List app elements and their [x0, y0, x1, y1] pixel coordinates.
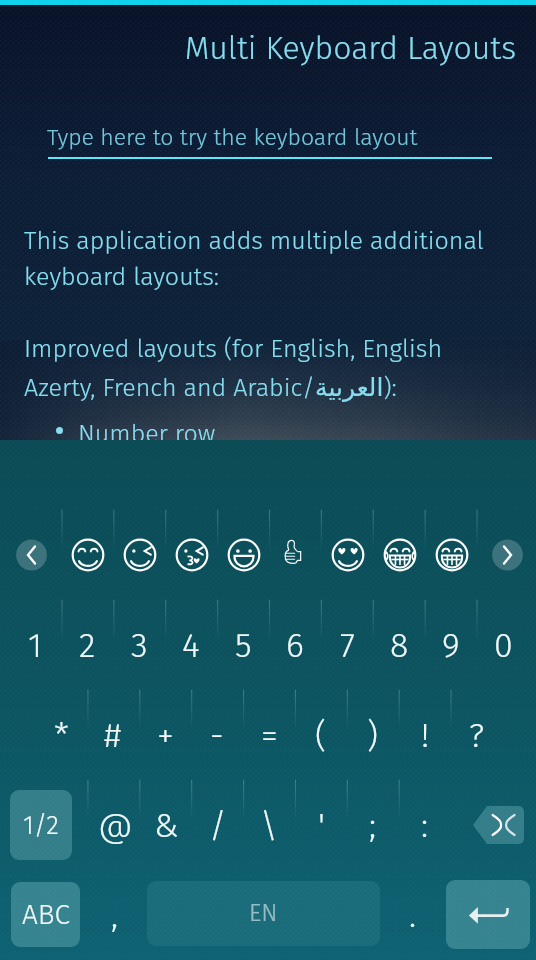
- staticText: ?: [469, 715, 485, 756]
- staticText: 7: [340, 625, 355, 666]
- staticText: Multi Keyboard Layouts: [0, 29, 516, 67]
- staticText: ;: [369, 805, 377, 846]
- staticText: ABC: [22, 898, 70, 932]
- button[interactable]: Previous emoji page: [16, 539, 48, 571]
- staticText: @: [98, 805, 133, 846]
- button[interactable]: ?: [451, 690, 503, 780]
- button[interactable]: 4: [165, 600, 217, 690]
- staticText: Type here to try the keyboard layout: [47, 123, 418, 151]
- staticText: 2: [79, 625, 96, 666]
- staticText: EN: [249, 899, 278, 928]
- staticText: +: [157, 715, 174, 756]
- staticText: This application adds multiple additiona…: [24, 226, 484, 256]
- button[interactable]: ;: [347, 780, 399, 870]
- button[interactable]: @: [90, 780, 141, 870]
- staticText: !: [421, 715, 430, 756]
- staticText: -: [210, 715, 224, 756]
- button[interactable]: 1/2: [10, 790, 72, 860]
- button[interactable]: (: [295, 690, 347, 780]
- staticText: 4: [182, 625, 200, 666]
- button[interactable]: 1: [10, 600, 61, 690]
- staticText: 9: [442, 625, 460, 666]
- staticText: Number row: [78, 419, 216, 449]
- button[interactable]: #: [87, 690, 139, 780]
- button[interactable]: 2: [61, 600, 113, 690]
- button[interactable]: 0: [477, 600, 529, 690]
- staticText: =: [261, 715, 278, 756]
- button[interactable]: Enter: [446, 880, 530, 949]
- staticText: (: [315, 715, 327, 756]
- button[interactable]: 8: [373, 600, 425, 690]
- staticText: 6: [286, 625, 304, 666]
- button[interactable]: !: [399, 690, 451, 780]
- staticText: &: [154, 805, 179, 846]
- staticText: 1/2: [23, 810, 59, 841]
- button[interactable]: :: [399, 780, 451, 870]
- staticText: *: [54, 715, 69, 756]
- staticText: ': [318, 805, 325, 846]
- button[interactable]: ABC: [11, 882, 80, 947]
- staticText: 0: [494, 625, 513, 666]
- staticText: 5: [235, 625, 252, 666]
- button[interactable]: +: [139, 690, 191, 780]
- button[interactable]: 6: [269, 600, 321, 690]
- button[interactable]: 9: [425, 600, 477, 690]
- button[interactable]: *: [36, 690, 87, 780]
- staticText: Azerty, French and Arabic/العربية):: [24, 373, 397, 403]
- staticText: 8: [390, 625, 409, 666]
- staticText: 3: [131, 625, 148, 666]
- button[interactable]: 5: [217, 600, 269, 690]
- button[interactable]: EN: [147, 881, 380, 946]
- staticText: #: [104, 715, 122, 756]
- staticText: Improved layouts (for English, English: [24, 334, 443, 364]
- button[interactable]: .: [385, 870, 441, 960]
- button[interactable]: =: [243, 690, 295, 780]
- staticText: .: [409, 895, 417, 936]
- button[interactable]: ': [295, 780, 347, 870]
- button[interactable]: 7: [321, 600, 373, 690]
- button[interactable]: ): [347, 690, 399, 780]
- staticText: \: [260, 805, 278, 846]
- staticText: /: [209, 805, 227, 846]
- button[interactable]: &: [141, 780, 192, 870]
- staticText: 1: [28, 625, 43, 666]
- button[interactable]: ,: [85, 870, 145, 960]
- button[interactable]: Next emoji page: [488, 539, 520, 571]
- button[interactable]: \: [243, 780, 295, 870]
- staticText: ,: [111, 895, 119, 936]
- button[interactable]: /: [192, 780, 243, 870]
- staticText: :: [421, 805, 429, 846]
- staticText: ): [367, 715, 379, 756]
- button[interactable]: -: [191, 690, 243, 780]
- staticText: keyboard layouts:: [24, 262, 219, 292]
- button[interactable]: Backspace: [473, 806, 524, 844]
- button[interactable]: 3: [113, 600, 165, 690]
